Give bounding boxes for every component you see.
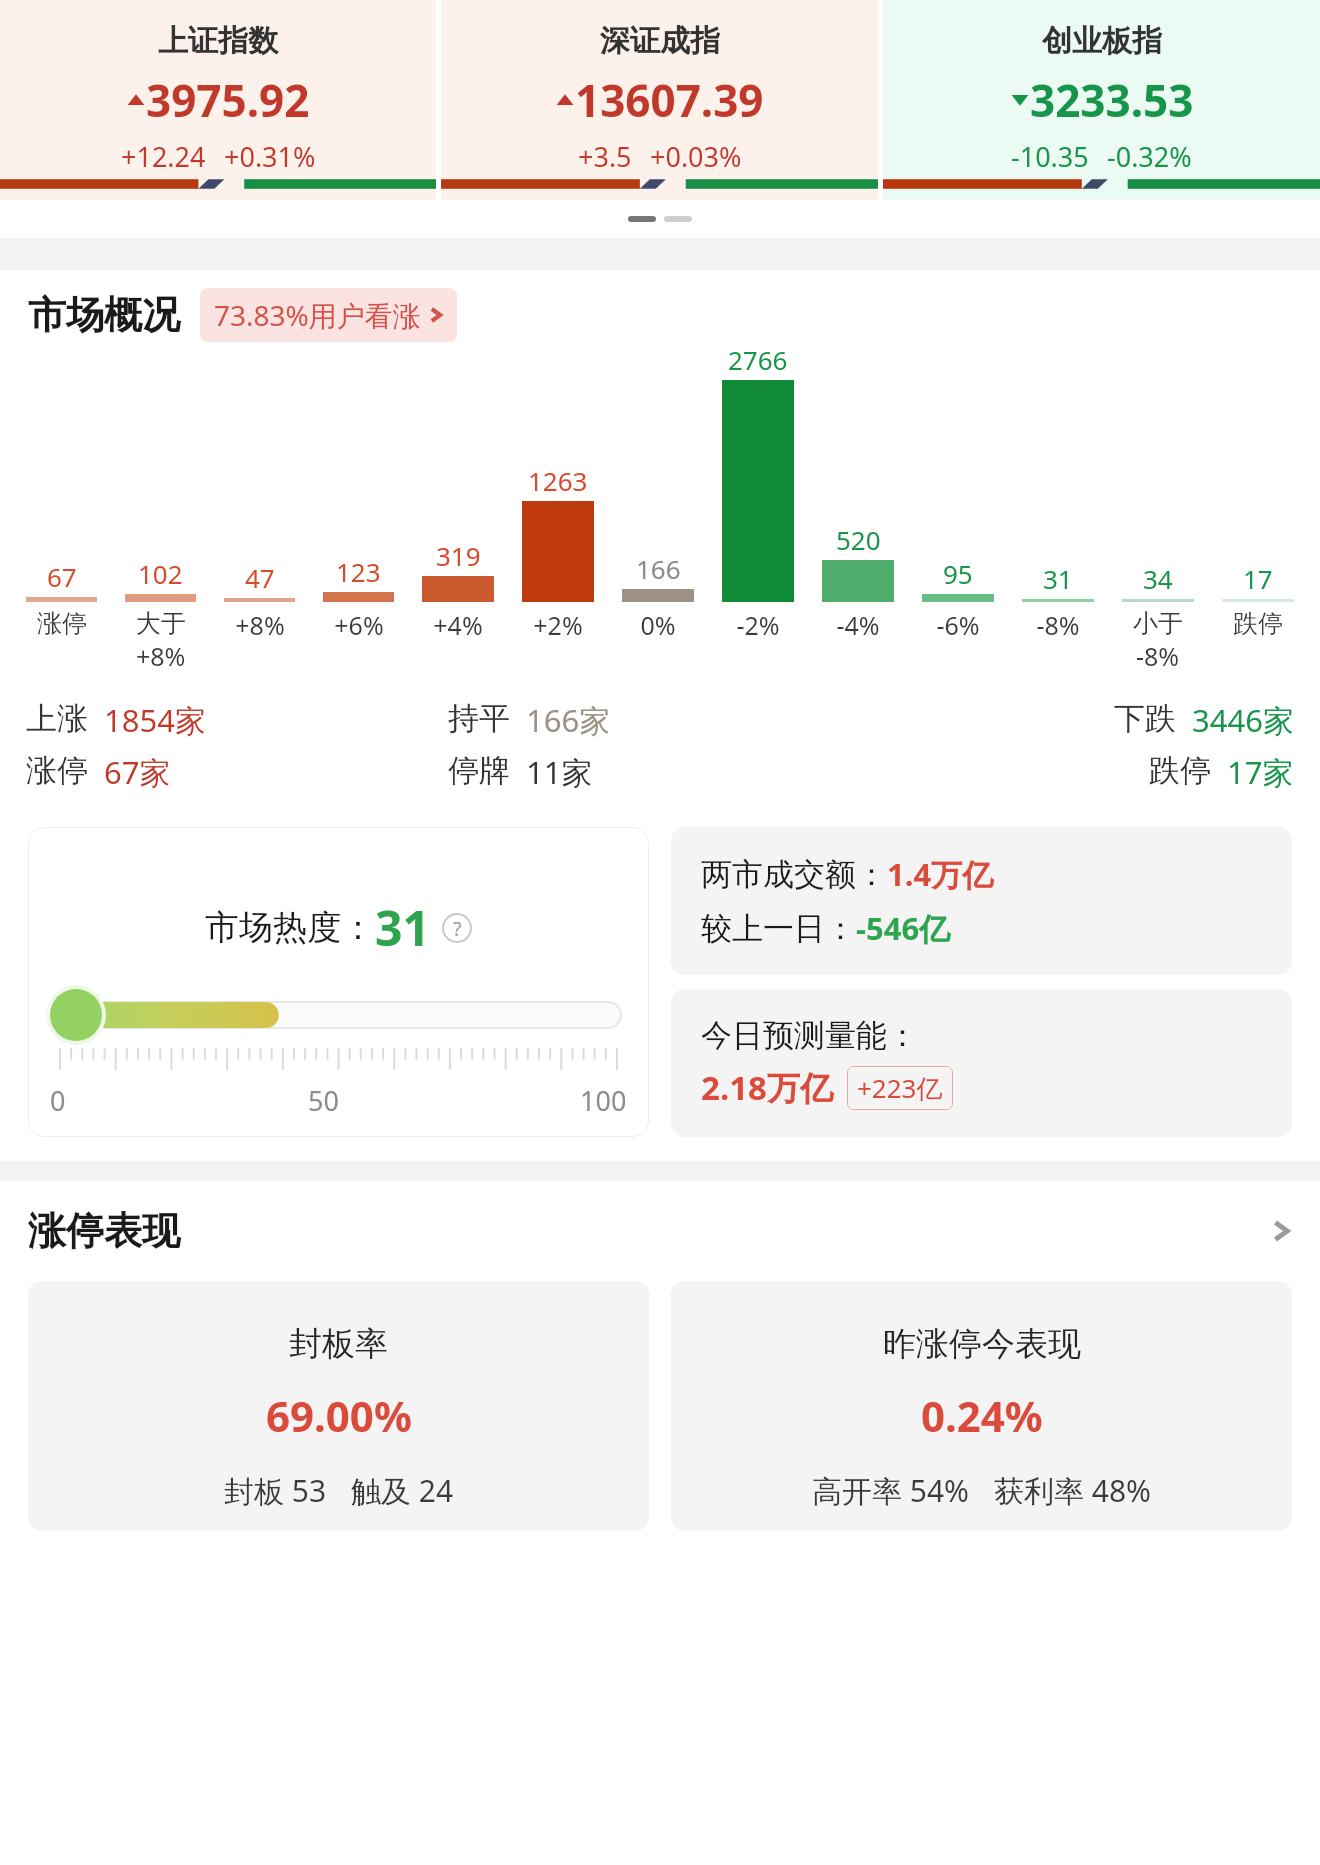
staticText: +2% bbox=[533, 608, 583, 642]
staticText: 166家 bbox=[526, 699, 611, 741]
staticText: -8% bbox=[1136, 639, 1180, 673]
staticText: 创业板指 bbox=[1042, 22, 1162, 60]
staticText: 1854家 bbox=[104, 699, 206, 741]
staticText: 0 bbox=[50, 1082, 66, 1119]
staticText: 跌停 bbox=[1149, 751, 1211, 790]
staticText: 封板率 bbox=[289, 1323, 388, 1365]
staticText: 市场热度： bbox=[205, 906, 375, 949]
staticText: 深证成指 bbox=[600, 22, 720, 60]
staticText: -4% bbox=[836, 608, 880, 642]
button[interactable]: 创业板指 bbox=[883, 0, 1320, 200]
staticText: 166 bbox=[636, 551, 681, 586]
staticText: 47 bbox=[245, 560, 275, 595]
button[interactable]: 深证成指 bbox=[441, 0, 878, 200]
staticText: 1263 bbox=[528, 463, 588, 498]
staticText: 0.24% bbox=[921, 1387, 1043, 1444]
staticText: 95 bbox=[943, 556, 973, 591]
staticText: 17 bbox=[1243, 561, 1273, 596]
staticText: 13607.39 bbox=[575, 70, 764, 130]
staticText: 73.83%用户看涨 bbox=[214, 296, 421, 334]
staticText: 0% bbox=[640, 608, 676, 642]
staticText: 31 bbox=[375, 895, 430, 960]
button[interactable]: 73.83%用户看涨 bbox=[200, 288, 457, 342]
staticText: 获利率 48% bbox=[994, 1470, 1152, 1511]
staticText: +8% bbox=[136, 639, 186, 673]
other: 更多 bbox=[1270, 1214, 1292, 1248]
staticText: 3975.92 bbox=[146, 70, 310, 130]
staticText: 市场概况 bbox=[28, 291, 180, 339]
staticText: 319 bbox=[436, 538, 481, 573]
staticText: +0.31% bbox=[224, 138, 316, 175]
staticText: 11家 bbox=[526, 751, 593, 793]
staticText: ? bbox=[453, 915, 462, 942]
staticText: 31 bbox=[1043, 561, 1073, 596]
staticText: 跌停 bbox=[1233, 608, 1283, 639]
staticText: 67家 bbox=[104, 751, 171, 793]
staticText: 2.18万亿 bbox=[701, 1065, 833, 1110]
staticText: 小于 bbox=[1133, 608, 1183, 639]
staticText: 102 bbox=[138, 556, 183, 591]
staticText: -8% bbox=[1036, 608, 1080, 642]
button[interactable]: 上证指数 bbox=[0, 0, 436, 200]
staticText: 100 bbox=[580, 1082, 627, 1119]
staticText: 69.00% bbox=[266, 1387, 412, 1444]
button[interactable]: 两市成交额： bbox=[671, 827, 1292, 975]
staticText: 高开率 54% bbox=[812, 1470, 970, 1511]
button[interactable]: 昨涨停今表现 bbox=[671, 1281, 1292, 1531]
staticText: 大于 bbox=[136, 608, 186, 639]
button[interactable]: 今日预测量能： bbox=[671, 989, 1292, 1137]
staticText: +223亿 bbox=[857, 1070, 943, 1106]
staticText: 3233.53 bbox=[1030, 70, 1194, 130]
staticText: -546亿 bbox=[856, 907, 951, 949]
staticText: 较上一日： bbox=[701, 909, 856, 948]
staticText: -0.32% bbox=[1107, 138, 1192, 175]
button[interactable]: 涨停表现 bbox=[0, 1207, 1320, 1255]
button[interactable]: 封板率 bbox=[28, 1281, 649, 1531]
staticText: 1.4万亿 bbox=[887, 853, 994, 895]
staticText: 持平 bbox=[448, 699, 510, 738]
staticText: 123 bbox=[336, 554, 381, 589]
staticText: 昨涨停今表现 bbox=[883, 1323, 1081, 1365]
staticText: +0.03% bbox=[650, 138, 742, 175]
staticText: 3446家 bbox=[1192, 699, 1294, 741]
staticText: 上涨 bbox=[26, 699, 88, 738]
staticText: 2766 bbox=[728, 342, 788, 377]
staticText: +12.24 bbox=[121, 138, 206, 175]
button[interactable]: 说明 bbox=[442, 913, 472, 943]
staticText: +3.5 bbox=[578, 138, 632, 175]
staticText: 50 bbox=[308, 1082, 339, 1119]
staticText: 34 bbox=[1143, 561, 1173, 596]
staticText: +4% bbox=[433, 608, 483, 642]
staticText: +6% bbox=[334, 608, 384, 642]
staticText: 17家 bbox=[1227, 751, 1294, 793]
staticText: 今日预测量能： bbox=[701, 1016, 918, 1055]
staticText: 触及 24 bbox=[351, 1470, 454, 1511]
staticText: 涨停表现 bbox=[28, 1207, 180, 1255]
staticText: 封板 53 bbox=[224, 1470, 327, 1511]
staticText: 67 bbox=[47, 559, 77, 594]
staticText: 下跌 bbox=[1114, 699, 1176, 738]
button[interactable]: 市场热度： bbox=[28, 827, 649, 1137]
staticText: 涨停 bbox=[26, 751, 88, 790]
staticText: 两市成交额： bbox=[701, 855, 887, 894]
staticText: 520 bbox=[836, 522, 881, 557]
staticText: -10.35 bbox=[1011, 138, 1089, 175]
staticText: -6% bbox=[936, 608, 980, 642]
staticText: 上证指数 bbox=[158, 22, 278, 60]
staticText: +8% bbox=[235, 608, 285, 642]
staticText: 涨停 bbox=[37, 608, 87, 639]
staticText: 停牌 bbox=[448, 751, 510, 790]
staticText: -2% bbox=[736, 608, 780, 642]
